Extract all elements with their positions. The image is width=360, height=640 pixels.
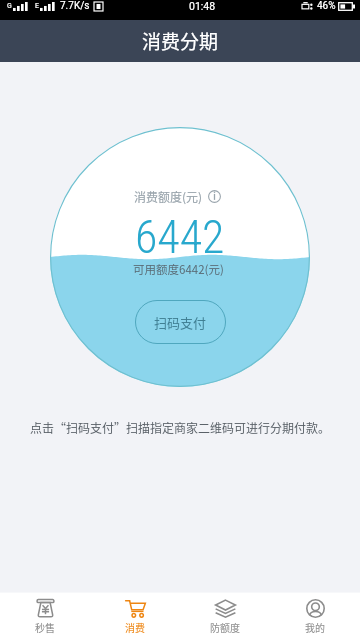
button[interactable]: 扫码支付 <box>135 300 226 344</box>
staticText: 点击“扫码支付”扫描指定商家二维码可进行分期付款。 <box>0 419 360 436</box>
staticText: 消费额度(元) <box>134 188 203 205</box>
staticText: 防额度 <box>210 620 240 634</box>
staticText: 秒售 <box>35 620 55 634</box>
staticText: 消费 <box>125 620 145 634</box>
button[interactable]: Profile <box>270 593 360 640</box>
staticText: 可用额度6442(元) <box>133 261 224 278</box>
staticText: 我的 <box>305 620 325 634</box>
button[interactable]: About credit limit <box>208 190 221 203</box>
button[interactable]: Credit limit <box>180 593 270 640</box>
staticText: 6442 <box>135 210 225 264</box>
staticText: G <box>7 2 12 10</box>
staticText: 01:48 <box>189 0 216 12</box>
staticText: 46% <box>317 0 336 12</box>
button[interactable]: Instant sale <box>0 593 90 640</box>
staticText: E <box>35 2 39 10</box>
staticText: 消费分期 <box>142 27 219 55</box>
staticText: 扫码支付 <box>154 313 207 332</box>
staticText: 7.7K/s <box>60 0 90 12</box>
button[interactable]: Spend <box>90 593 180 640</box>
